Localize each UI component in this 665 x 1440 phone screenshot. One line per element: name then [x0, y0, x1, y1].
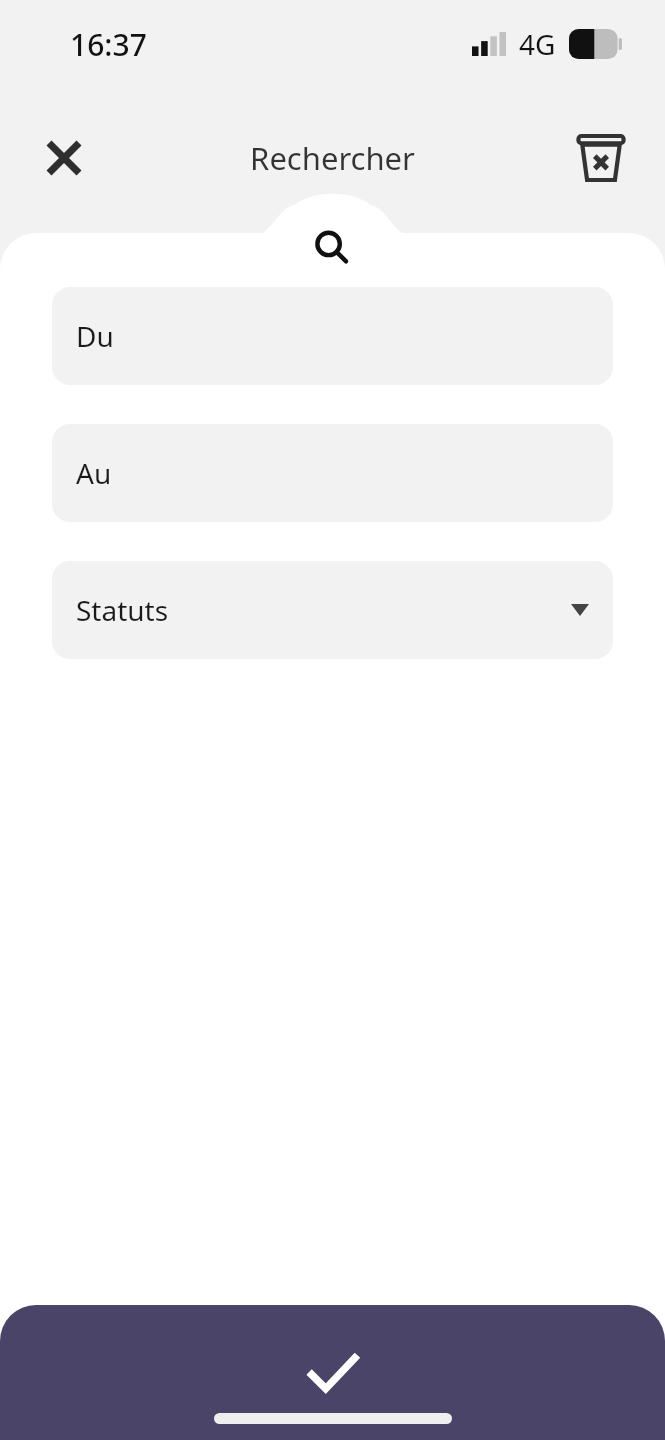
staticText: Au [76, 454, 112, 492]
button[interactable]: Du [52, 287, 613, 385]
button[interactable]: Valider [0, 1305, 665, 1440]
button[interactable]: Effacer [565, 122, 637, 194]
staticText: 16:37 [70, 24, 147, 65]
button[interactable]: Fermer [28, 122, 100, 194]
button[interactable]: Rechercher [296, 212, 368, 284]
button[interactable]: Au [52, 424, 613, 522]
button[interactable]: Statuts [52, 561, 613, 659]
staticText: 4G [519, 25, 556, 63]
staticText: Statuts [76, 591, 169, 629]
staticText: Du [76, 317, 114, 355]
staticText: Rechercher [250, 137, 415, 179]
